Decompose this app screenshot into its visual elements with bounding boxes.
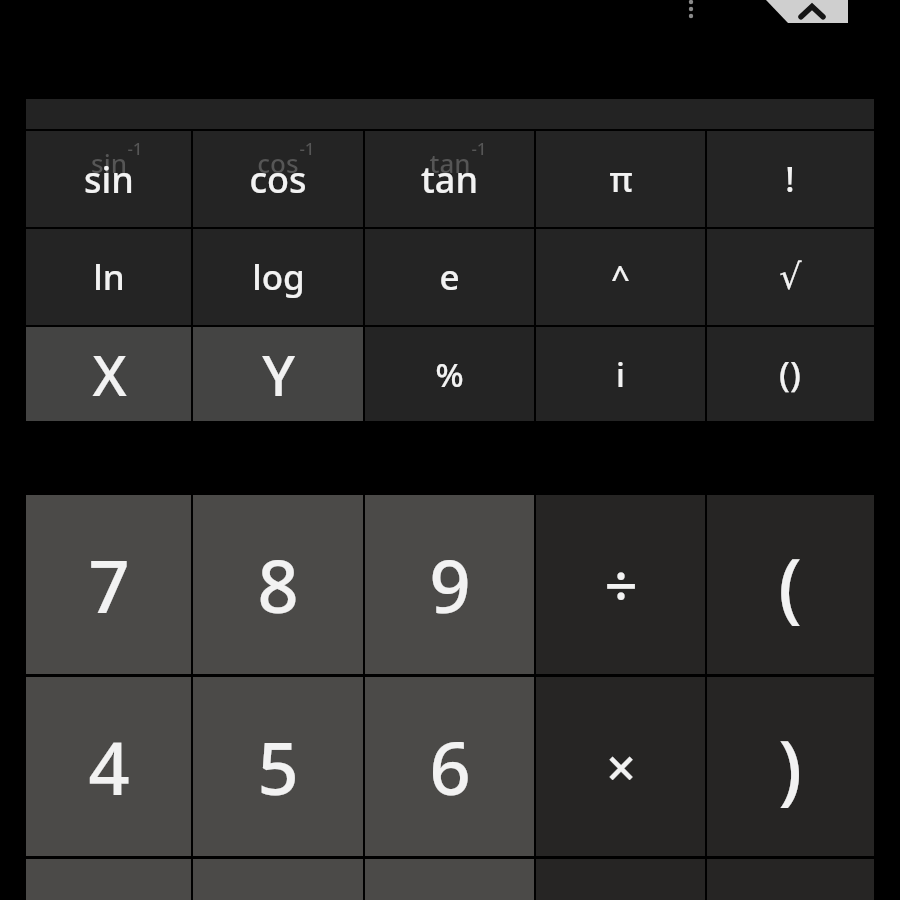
staticText: √	[779, 257, 802, 298]
staticText: 5	[257, 718, 299, 816]
button[interactable]: cos	[192, 131, 364, 227]
staticText: π	[609, 156, 633, 202]
button[interactable]: X	[26, 327, 192, 421]
button[interactable]: 8	[192, 495, 364, 674]
button[interactable]: sin	[26, 131, 192, 227]
staticText: )	[778, 715, 802, 819]
staticText: ^	[611, 255, 630, 300]
button[interactable]: √	[706, 229, 874, 325]
staticText: ln	[93, 253, 125, 301]
staticText: (	[778, 533, 802, 637]
button[interactable]	[26, 859, 192, 900]
button[interactable]: 9	[364, 495, 535, 674]
staticText: ×	[606, 731, 636, 802]
button[interactable]: Collapse panel	[748, 0, 848, 23]
button[interactable]	[535, 859, 706, 900]
button[interactable]: 4	[26, 677, 192, 856]
button[interactable]: i	[535, 327, 706, 421]
staticText: log	[252, 253, 305, 301]
staticText: 9	[429, 536, 471, 634]
button[interactable]: More options	[681, 0, 701, 20]
staticText: cos	[249, 155, 307, 204]
button[interactable]: π	[535, 131, 706, 227]
staticText: -1	[127, 137, 143, 160]
staticText: X	[92, 336, 127, 412]
staticText: Y	[262, 336, 295, 412]
button[interactable]: log	[192, 229, 364, 325]
staticText: cos	[257, 145, 299, 180]
staticText: -1	[299, 137, 315, 160]
staticText: 7	[88, 536, 130, 634]
button[interactable]: 7	[26, 495, 192, 674]
button[interactable]: )	[706, 677, 874, 856]
button[interactable]: ()	[706, 327, 874, 421]
staticText: i	[616, 352, 625, 397]
button[interactable]: ^	[535, 229, 706, 325]
staticText: sin	[91, 145, 127, 180]
staticText: 4	[88, 718, 130, 816]
staticText: e	[439, 253, 460, 301]
staticText: !	[785, 156, 795, 202]
staticText: 6	[429, 718, 471, 816]
button[interactable]: ÷	[535, 495, 706, 674]
button[interactable]: (	[706, 495, 874, 674]
button[interactable]: Y	[192, 327, 364, 421]
staticText: 8	[257, 536, 299, 634]
staticText: %	[435, 352, 464, 397]
staticText: tan	[421, 155, 478, 204]
staticText: ()	[779, 350, 801, 398]
button[interactable]: ×	[535, 677, 706, 856]
button[interactable]	[364, 859, 535, 900]
button[interactable]: tan	[364, 131, 535, 227]
button[interactable]	[192, 859, 364, 900]
staticText: tan	[429, 145, 471, 180]
button[interactable]: e	[364, 229, 535, 325]
staticText: sin	[84, 155, 134, 204]
button[interactable]: 6	[364, 677, 535, 856]
staticText: -1	[471, 137, 487, 160]
staticText: ÷	[604, 545, 638, 624]
button[interactable]: ln	[26, 229, 192, 325]
button[interactable]: 5	[192, 677, 364, 856]
button[interactable]: !	[706, 131, 874, 227]
button[interactable]: %	[364, 327, 535, 421]
